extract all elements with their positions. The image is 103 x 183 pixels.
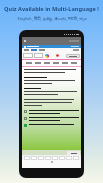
staticText: Quiz Available in Multi-Language ! bbox=[4, 5, 99, 13]
staticText: English, हिंदी, தமிழ், తెలుగు, मराठी, ಕನ… bbox=[17, 16, 87, 23]
